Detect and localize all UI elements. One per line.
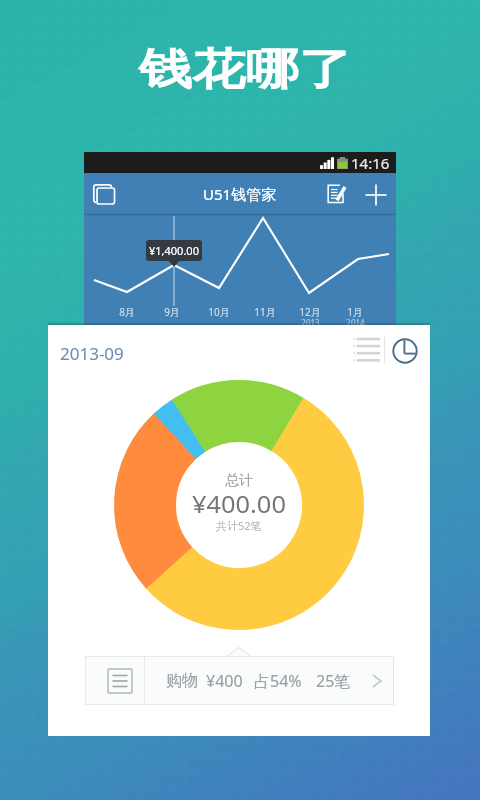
staticText: U51钱管家 xyxy=(203,184,277,204)
staticText: 8月 xyxy=(119,305,135,319)
staticText: ¥400.00 xyxy=(192,487,286,520)
staticText: ¥400 xyxy=(206,670,243,692)
staticText: 总计 xyxy=(225,472,253,490)
staticText: 2013 xyxy=(301,317,320,328)
staticText: 9月 xyxy=(164,305,180,319)
staticText: 购物 xyxy=(166,671,198,691)
button[interactable]: 购物 xyxy=(85,656,394,705)
button[interactable]: Add xyxy=(365,184,387,206)
button[interactable]: Edit xyxy=(327,184,347,204)
staticText: 1月 xyxy=(347,305,363,319)
staticText: 12月 xyxy=(299,305,321,319)
staticText: 14:16 xyxy=(351,153,390,173)
staticText: 11月 xyxy=(254,305,276,319)
staticText: 10月 xyxy=(208,305,230,319)
button[interactable]: Pie chart view xyxy=(392,338,418,364)
staticText: ¥1,400.00 xyxy=(149,243,199,258)
staticText: 共计52笔 xyxy=(216,518,262,533)
button[interactable]: List view xyxy=(352,333,385,363)
staticText: 2014 xyxy=(346,317,365,328)
staticText: 钱花哪了 xyxy=(139,43,352,97)
staticText: 占54% xyxy=(254,670,302,692)
button[interactable]: Accounts xyxy=(93,184,116,205)
staticText: 25笔 xyxy=(316,670,351,692)
staticText: 2013-09 xyxy=(60,342,124,365)
